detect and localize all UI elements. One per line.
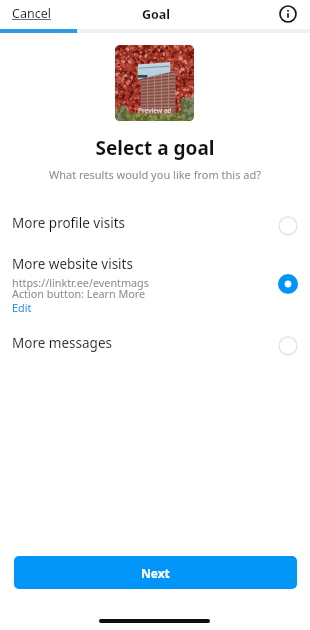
staticText: Cancel	[12, 5, 51, 22]
button[interactable]: Edit	[12, 300, 32, 315]
staticText: Preview ad	[138, 106, 172, 115]
button[interactable]: More website visits	[0, 250, 310, 318]
staticText: Action button: Learn More	[12, 286, 146, 301]
staticText: Next	[141, 565, 170, 581]
staticText: More website visits	[12, 255, 133, 273]
staticText: https://linktr.ee/eventmags	[12, 275, 149, 290]
staticText: Select a goal	[0, 135, 310, 161]
button[interactable]: More profile visits	[0, 207, 310, 243]
staticText: More profile visits	[12, 214, 125, 232]
button[interactable]: More messages	[0, 327, 310, 363]
button[interactable]: Preview ad	[115, 45, 194, 121]
staticText: What results would you like from this ad…	[0, 167, 310, 182]
button[interactable]: Next	[14, 556, 297, 589]
button[interactable]: Information	[279, 5, 297, 23]
staticText: More messages	[12, 334, 112, 352]
button[interactable]: Cancel	[12, 5, 51, 22]
staticText: Goal	[142, 6, 171, 23]
